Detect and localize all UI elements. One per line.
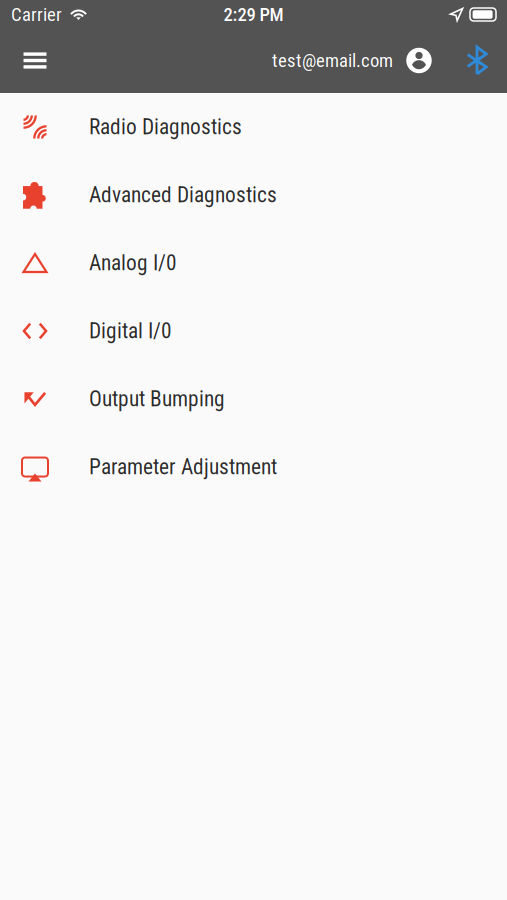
button[interactable]: Parameter Adjustment — [0, 433, 507, 501]
staticText: 2:29 PM — [223, 4, 283, 25]
staticText: Output Bumping — [89, 386, 225, 411]
button[interactable]: Digital I/0 — [0, 297, 507, 365]
staticText: Analog I/0 — [89, 250, 177, 275]
staticText: Digital I/0 — [89, 318, 172, 343]
button[interactable]: Menu — [11, 32, 58, 88]
button[interactable]: Bluetooth — [455, 32, 499, 88]
button[interactable]: Advanced Diagnostics — [0, 161, 507, 229]
button[interactable]: Analog I/0 — [0, 229, 507, 297]
staticText: Parameter Adjustment — [89, 454, 277, 479]
button[interactable]: Output Bumping — [0, 365, 507, 433]
staticText: Radio Diagnostics — [89, 114, 242, 139]
staticText: Advanced Diagnostics — [89, 182, 277, 207]
staticText: test@email.com — [272, 50, 393, 71]
staticText: Carrier — [11, 4, 62, 25]
button[interactable]: Account — [397, 32, 441, 88]
button[interactable]: Radio Diagnostics — [0, 93, 507, 161]
